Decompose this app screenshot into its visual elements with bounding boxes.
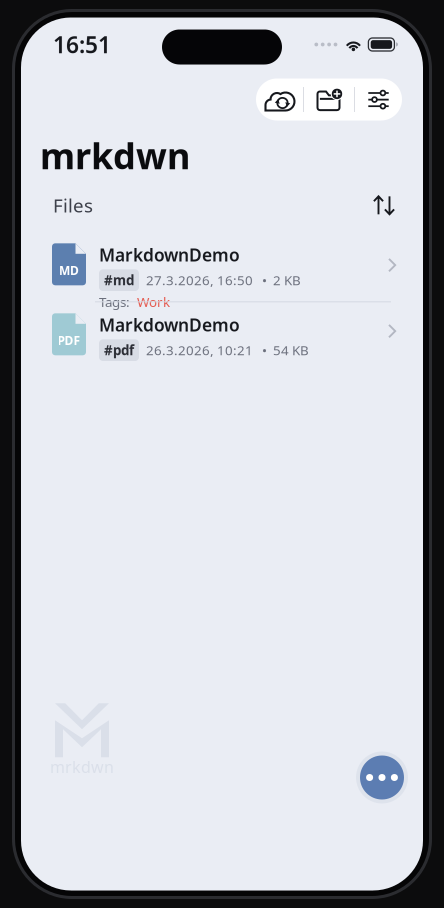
staticText: Tags: bbox=[99, 293, 130, 311]
staticText: MarkdownDemo bbox=[99, 313, 240, 336]
staticText: MD bbox=[59, 262, 79, 278]
button[interactable]: Settings bbox=[355, 78, 402, 120]
staticText: 27.3.2026, 16:50 • 2 KB bbox=[146, 271, 301, 289]
staticText: PDF bbox=[57, 332, 80, 348]
button[interactable]: MD bbox=[21, 232, 423, 301]
staticText: mrkdwn bbox=[40, 131, 190, 179]
staticText: #md bbox=[104, 271, 134, 289]
staticText: #pdf bbox=[104, 341, 134, 359]
staticText: mrkdwn bbox=[50, 756, 114, 777]
staticText: Files bbox=[53, 193, 93, 218]
button[interactable]: PDF bbox=[21, 302, 423, 360]
staticText: Work bbox=[137, 293, 170, 311]
button[interactable]: Sync with cloud bbox=[256, 78, 303, 120]
button[interactable]: More actions bbox=[354, 749, 410, 805]
button[interactable]: New folder bbox=[304, 78, 354, 120]
staticText: 16:51 bbox=[53, 29, 111, 59]
staticText: 26.3.2026, 10:21 • 54 KB bbox=[146, 341, 309, 359]
staticText: MarkdownDemo bbox=[99, 243, 240, 266]
button[interactable]: Sort bbox=[365, 191, 403, 219]
